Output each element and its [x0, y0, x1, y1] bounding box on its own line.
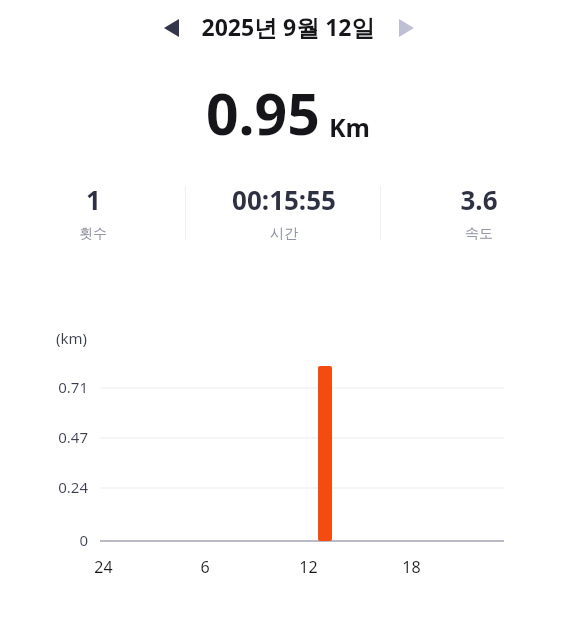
staticText: 1 — [86, 182, 101, 217]
staticText: 0.71 — [58, 377, 88, 397]
button[interactable]: 1 — [0, 178, 186, 247]
staticText: 24 — [94, 556, 113, 578]
staticText: (km) — [56, 328, 88, 348]
staticText: 12 — [299, 556, 318, 578]
button[interactable]: 이전 날짜 — [152, 9, 190, 47]
staticText: 2025년 9월 12일 — [201, 11, 375, 42]
staticText: 횟수 — [79, 225, 107, 243]
staticText: 0.24 — [58, 477, 88, 497]
staticText: Km — [329, 110, 370, 144]
button[interactable]: 00:15:55 — [186, 178, 381, 247]
staticText: 0.47 — [58, 427, 88, 447]
staticText: 시간 — [270, 225, 298, 243]
staticText: 3.6 — [460, 182, 498, 217]
staticText: 6 — [200, 556, 210, 578]
button[interactable]: 다음 날짜 — [387, 9, 425, 47]
staticText: 0.95 — [206, 74, 320, 152]
staticText: 속도 — [465, 225, 493, 243]
staticText: 00:15:55 — [232, 182, 336, 217]
button[interactable]: 3.6 — [381, 178, 576, 247]
staticText: 0 — [79, 530, 88, 550]
staticText: 18 — [402, 556, 421, 578]
